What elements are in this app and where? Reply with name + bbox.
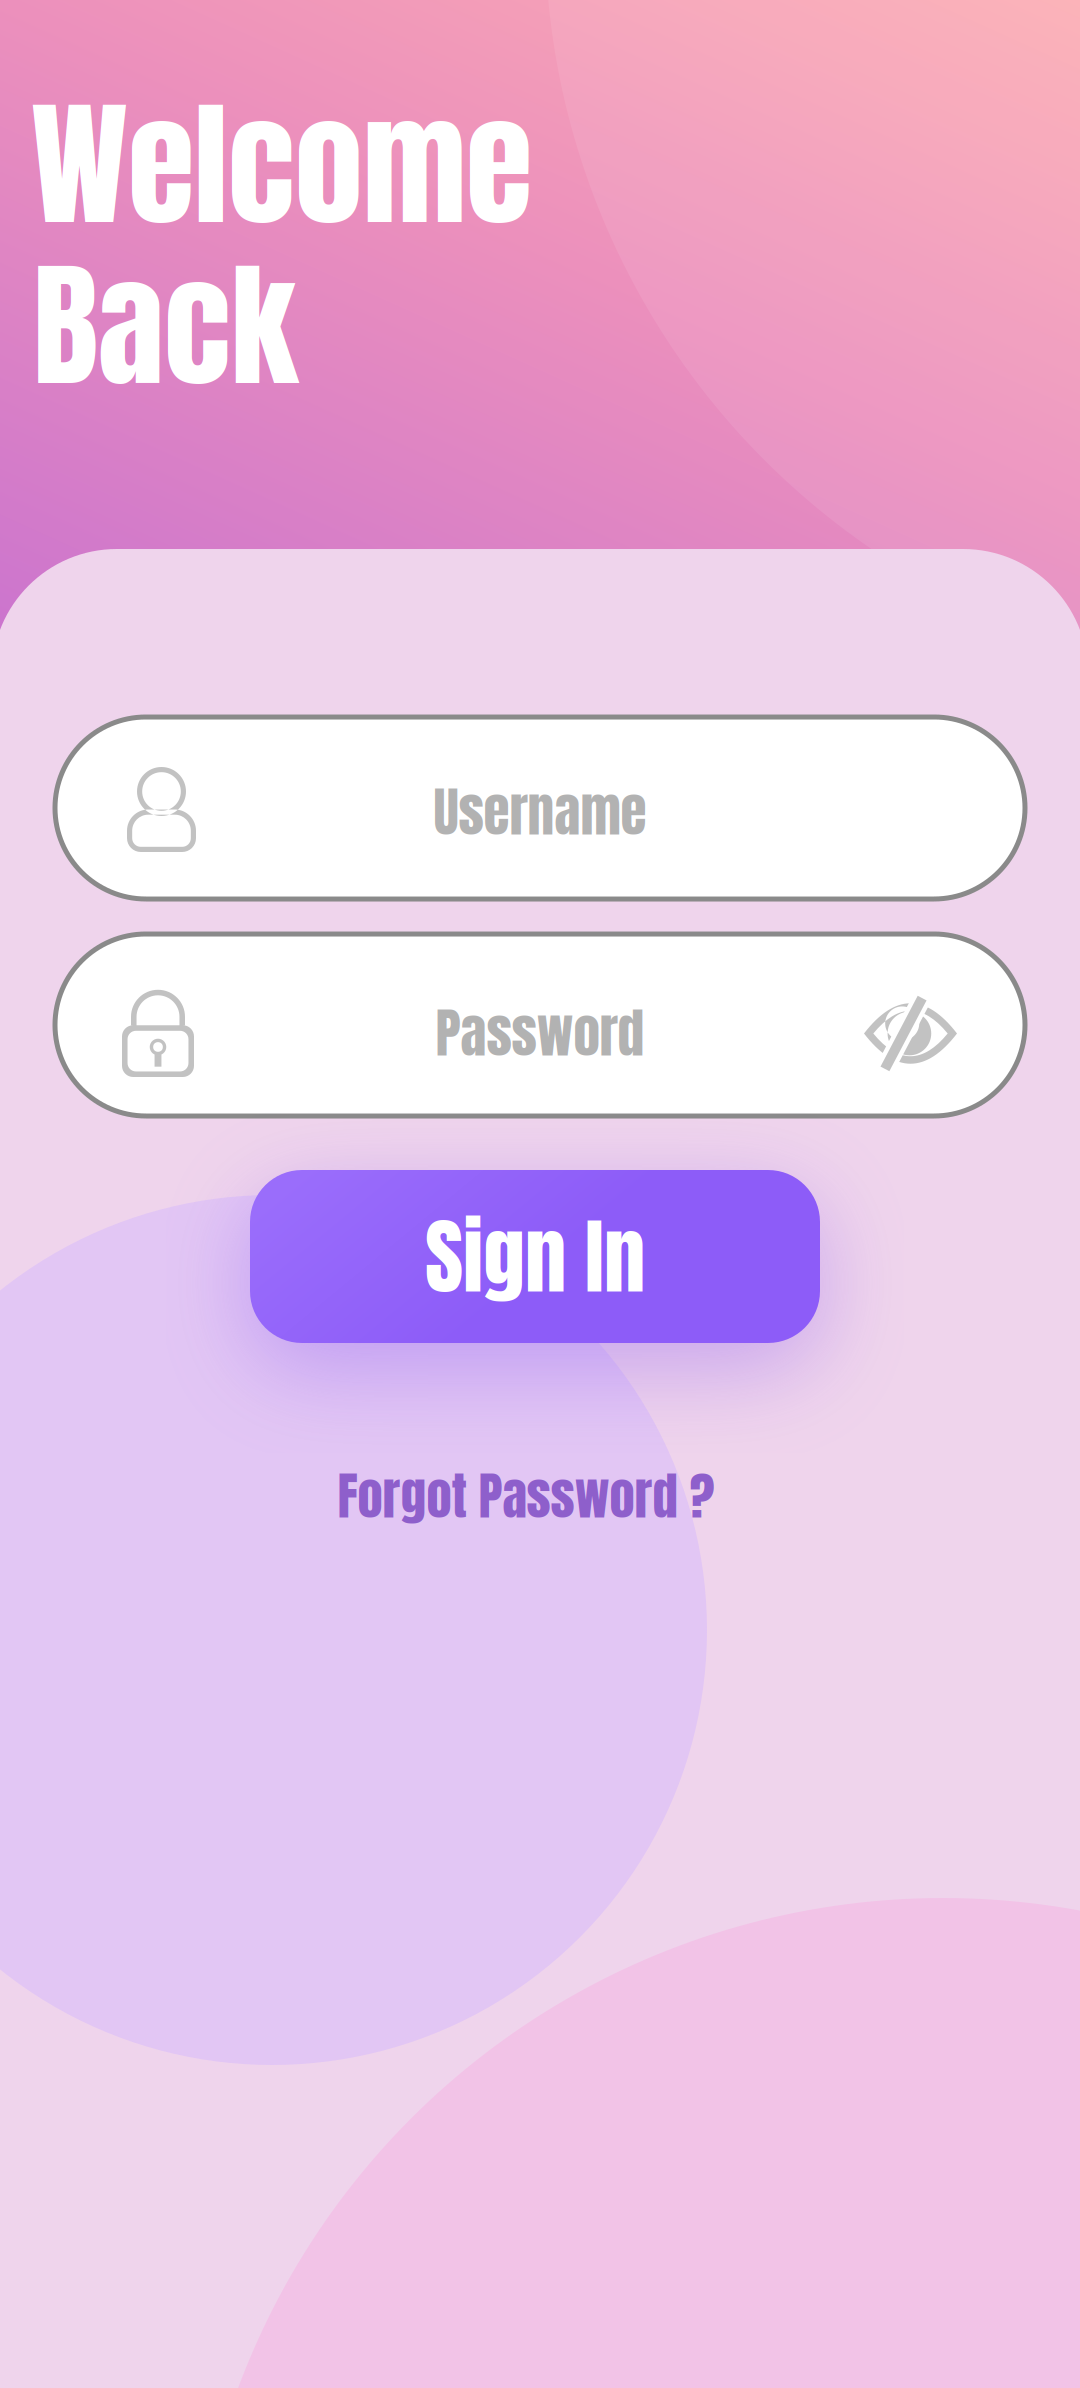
staticText: Welcome <box>31 62 532 267</box>
staticText: Forgot Password ? <box>337 1458 714 1534</box>
staticText: Back <box>33 223 298 428</box>
staticText: Username <box>433 772 646 852</box>
staticText: Password <box>435 993 644 1073</box>
button[interactable]: Show password <box>844 984 977 1083</box>
button[interactable]: Username <box>55 717 1025 899</box>
button[interactable]: Forgot Password ? <box>296 1458 756 1534</box>
staticText: Sign In <box>425 1194 645 1319</box>
button[interactable]: Sign In <box>250 1170 820 1343</box>
